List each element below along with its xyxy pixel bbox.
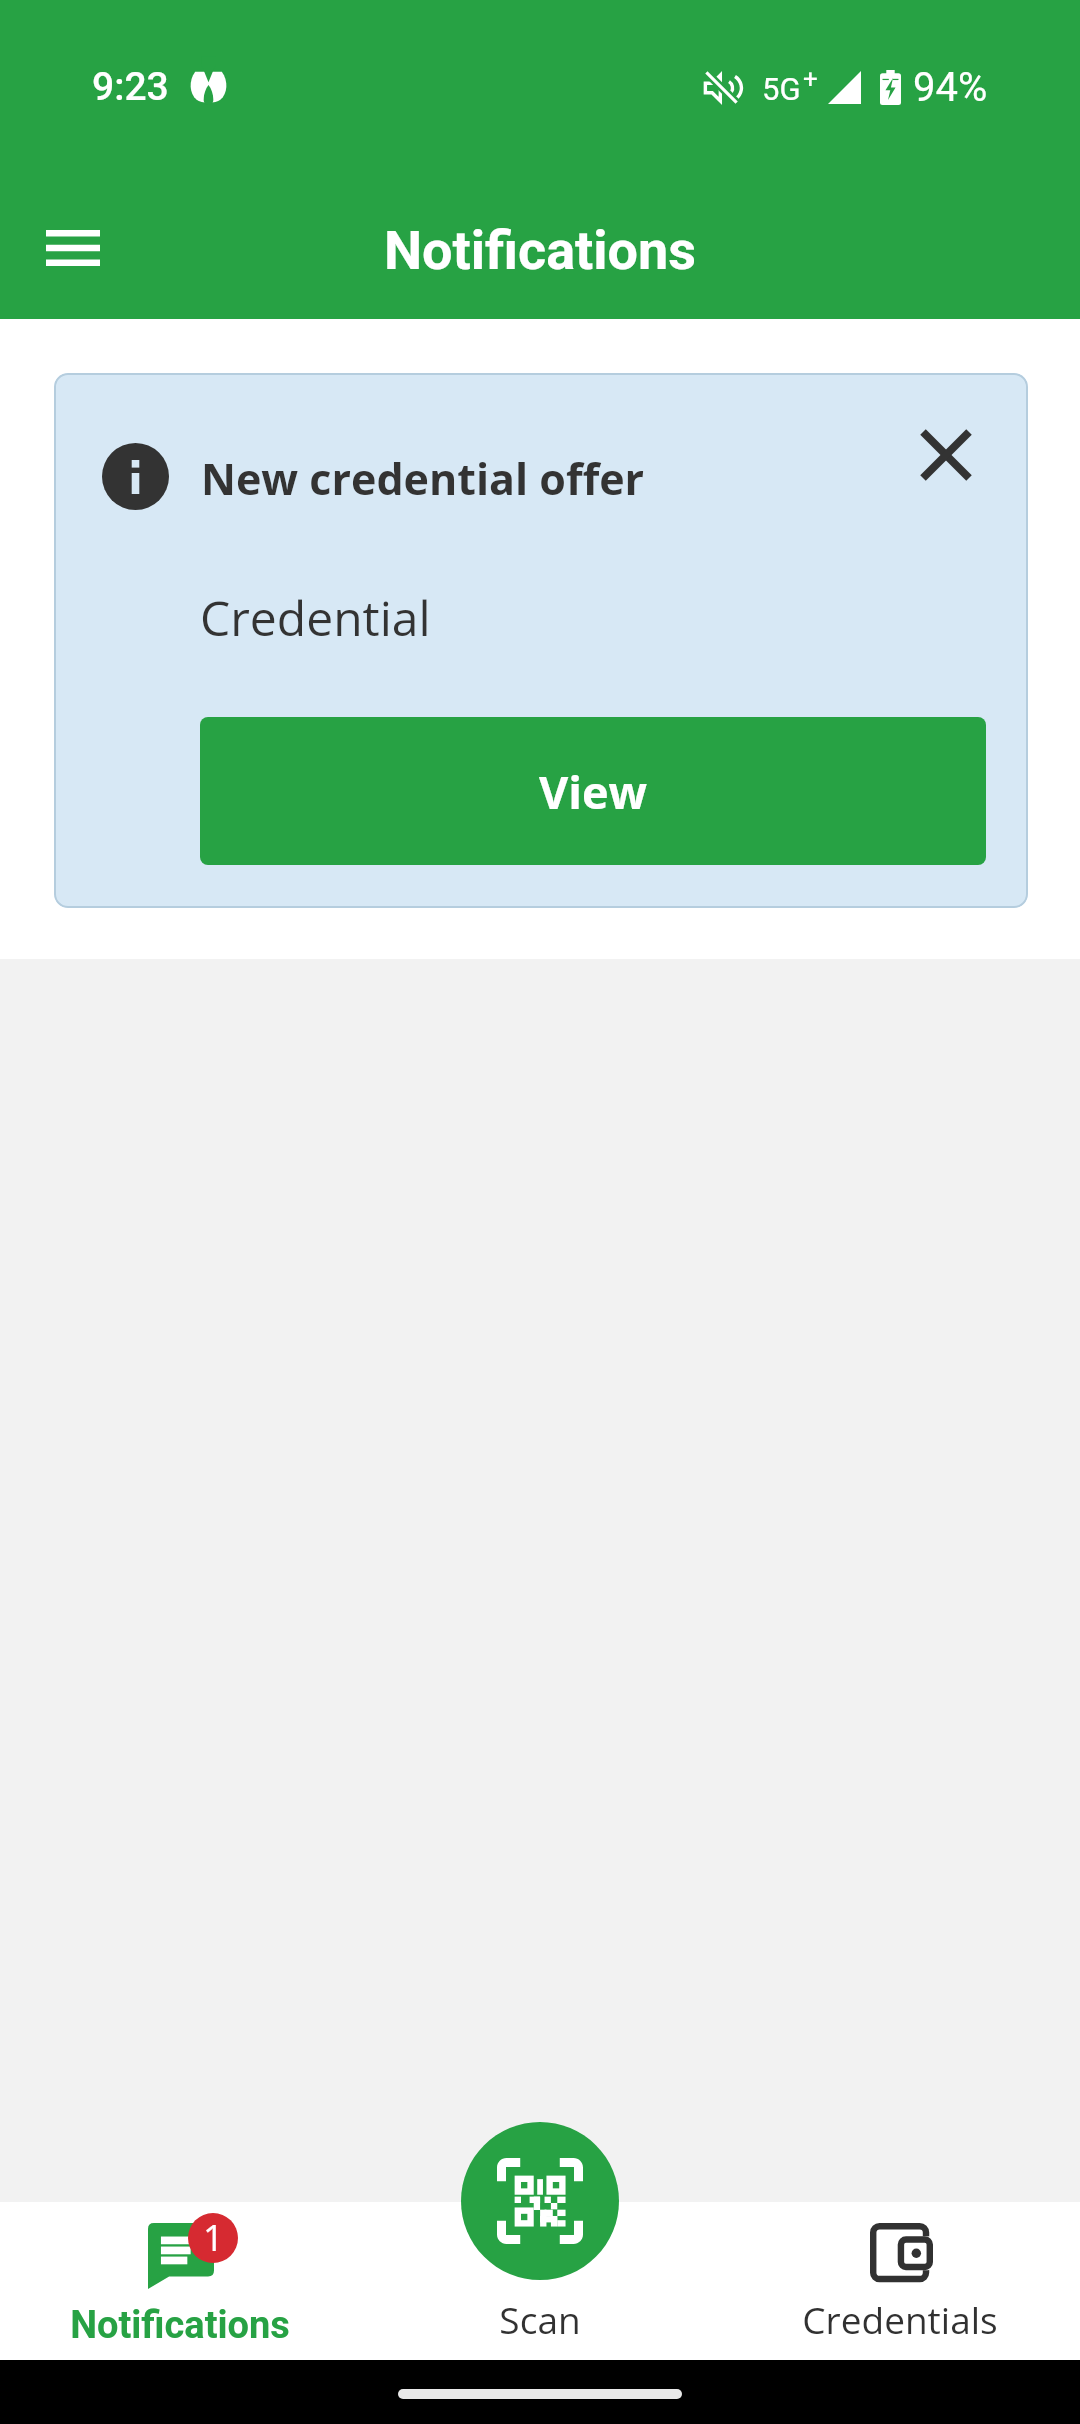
staticText: Credentials (802, 2294, 998, 2344)
button[interactable]: 1 (0, 2202, 360, 2360)
staticText: Scan (499, 2294, 581, 2344)
staticText: 1 (203, 2213, 224, 2262)
staticText: Notifications (70, 2303, 290, 2348)
button[interactable]: Scan (360, 2202, 720, 2360)
staticText: View (539, 761, 648, 822)
button[interactable]: Open navigation menu (25, 200, 121, 296)
staticText: Notifications (0, 219, 1080, 282)
staticText: Credential (200, 585, 431, 650)
staticText: 94% (913, 64, 988, 111)
button[interactable]: Scan QR code (461, 2122, 619, 2280)
staticText: 5G (762, 71, 801, 107)
button[interactable]: View (200, 717, 986, 865)
button[interactable]: Dismiss notification (896, 405, 996, 505)
button[interactable]: Credentials (720, 2202, 1080, 2360)
staticText: New credential offer (201, 449, 645, 508)
staticText: 9:23 (92, 64, 169, 110)
staticText: + (803, 64, 818, 94)
